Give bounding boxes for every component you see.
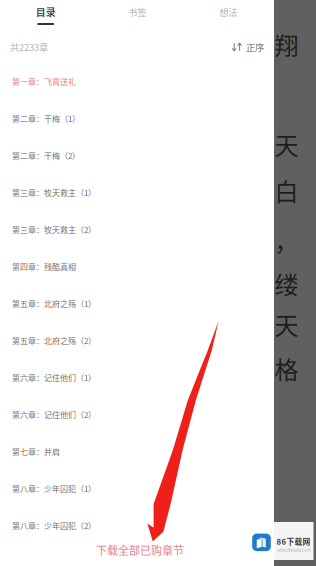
staticText: 目录	[36, 5, 56, 19]
button[interactable]: 第七章：并肩	[0, 433, 274, 470]
staticText: www.86xiazai.com	[277, 547, 311, 553]
button[interactable]: 第二章：干梅（2）	[0, 137, 274, 174]
staticText: 天	[274, 307, 298, 342]
button[interactable]: 第二章：干梅（1）	[0, 100, 274, 137]
button[interactable]: 下载全部已购章节	[96, 541, 226, 559]
staticText: 翔	[274, 27, 298, 62]
button[interactable]: 书签	[91, 4, 183, 34]
button[interactable]: 想法	[183, 4, 274, 34]
staticText: 缕	[274, 266, 298, 301]
staticText: 86下载网	[277, 536, 311, 547]
staticText: 书签	[128, 5, 146, 19]
button[interactable]: 第六章：记住他们（1）	[0, 359, 274, 396]
staticText: 第六章：记住他们（1）	[12, 372, 96, 383]
staticText: 第五章：北府之殇（2）	[12, 335, 96, 346]
button[interactable]: 第五章：北府之殇（2）	[0, 322, 274, 359]
staticText: 第六章：记住他们（2）	[12, 409, 96, 420]
staticText: 第四章：残酷真相	[12, 261, 76, 272]
button[interactable]: 正序	[232, 40, 264, 54]
staticText: 下载全部已购章节	[96, 542, 184, 558]
button[interactable]: 第一章：飞霄送礼	[0, 63, 274, 100]
staticText: 想法	[219, 5, 237, 19]
button[interactable]: 第八章：少年囚犯（1）	[0, 470, 274, 507]
staticText: 白	[274, 173, 298, 208]
button[interactable]: 第三章：牧天救主（1）	[0, 174, 274, 211]
staticText: 第八章：少年囚犯（1）	[12, 483, 96, 494]
staticText: 共2233章	[10, 40, 48, 54]
staticText: 第三章：牧天救主（2）	[12, 224, 96, 235]
staticText: ，	[274, 223, 298, 258]
button[interactable]: 目录	[0, 4, 91, 34]
staticText: 第一章：飞霄送礼	[12, 76, 76, 87]
staticText: 第八章：少年囚犯（2）	[12, 520, 96, 531]
staticText: 正序	[246, 40, 264, 54]
button[interactable]: 第三章：牧天救主（2）	[0, 211, 274, 248]
button[interactable]: 第四章：残酷真相	[0, 248, 274, 285]
staticText: 第五章：北府之殇（1）	[12, 298, 96, 309]
button[interactable]: 第八章：少年囚犯（2）	[0, 507, 274, 544]
staticText: 格	[274, 351, 298, 386]
staticText: 第七章：并肩	[12, 446, 60, 457]
button[interactable]: 第六章：记住他们（2）	[0, 396, 274, 433]
staticText: 天	[274, 127, 298, 162]
staticText: 第二章：干梅（1）	[12, 113, 80, 124]
button[interactable]: 第五章：北府之殇（1）	[0, 285, 274, 322]
staticText: 第二章：干梅（2）	[12, 150, 80, 161]
staticText: 第三章：牧天救主（1）	[12, 187, 96, 198]
